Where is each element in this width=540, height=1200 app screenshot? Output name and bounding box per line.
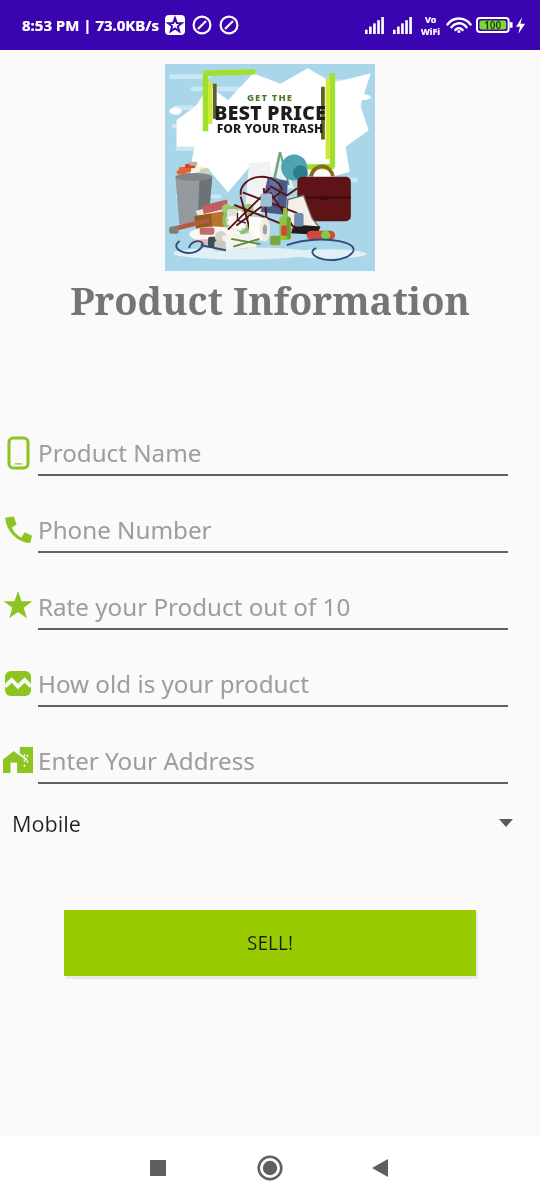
staticText: 8:53 PM | 73.0KB/s <box>22 15 160 35</box>
staticText: GET THE <box>165 91 375 104</box>
staticText: Mobile <box>12 809 81 838</box>
button[interactable]: Phone Number <box>0 507 540 567</box>
button[interactable]: SELL! <box>64 910 476 976</box>
button[interactable]: Mobile <box>0 795 540 851</box>
staticText: Product Name <box>38 436 202 469</box>
staticText: WiFi <box>421 25 441 37</box>
staticText: 100 <box>484 18 502 32</box>
button[interactable]: Back <box>356 1144 404 1192</box>
button[interactable]: Recent apps <box>134 1144 182 1192</box>
staticText: Product Information <box>0 274 540 326</box>
staticText: Vo <box>425 13 437 25</box>
staticText: Phone Number <box>38 513 212 546</box>
button[interactable]: Home <box>246 1144 294 1192</box>
button[interactable]: Rate your Product out of 10 <box>0 584 540 644</box>
button[interactable]: Enter Your Address <box>0 738 540 798</box>
staticText: Rate your Product out of 10 <box>38 590 351 623</box>
staticText: How old is your product <box>38 667 309 700</box>
button[interactable]: Product Name <box>0 430 540 490</box>
staticText: FOR YOUR TRASH <box>165 120 375 137</box>
staticText: Enter Your Address <box>38 744 255 777</box>
button[interactable]: How old is your product <box>0 661 540 721</box>
staticText: SELL! <box>247 930 294 956</box>
staticText: BEST PRICE <box>165 99 375 126</box>
